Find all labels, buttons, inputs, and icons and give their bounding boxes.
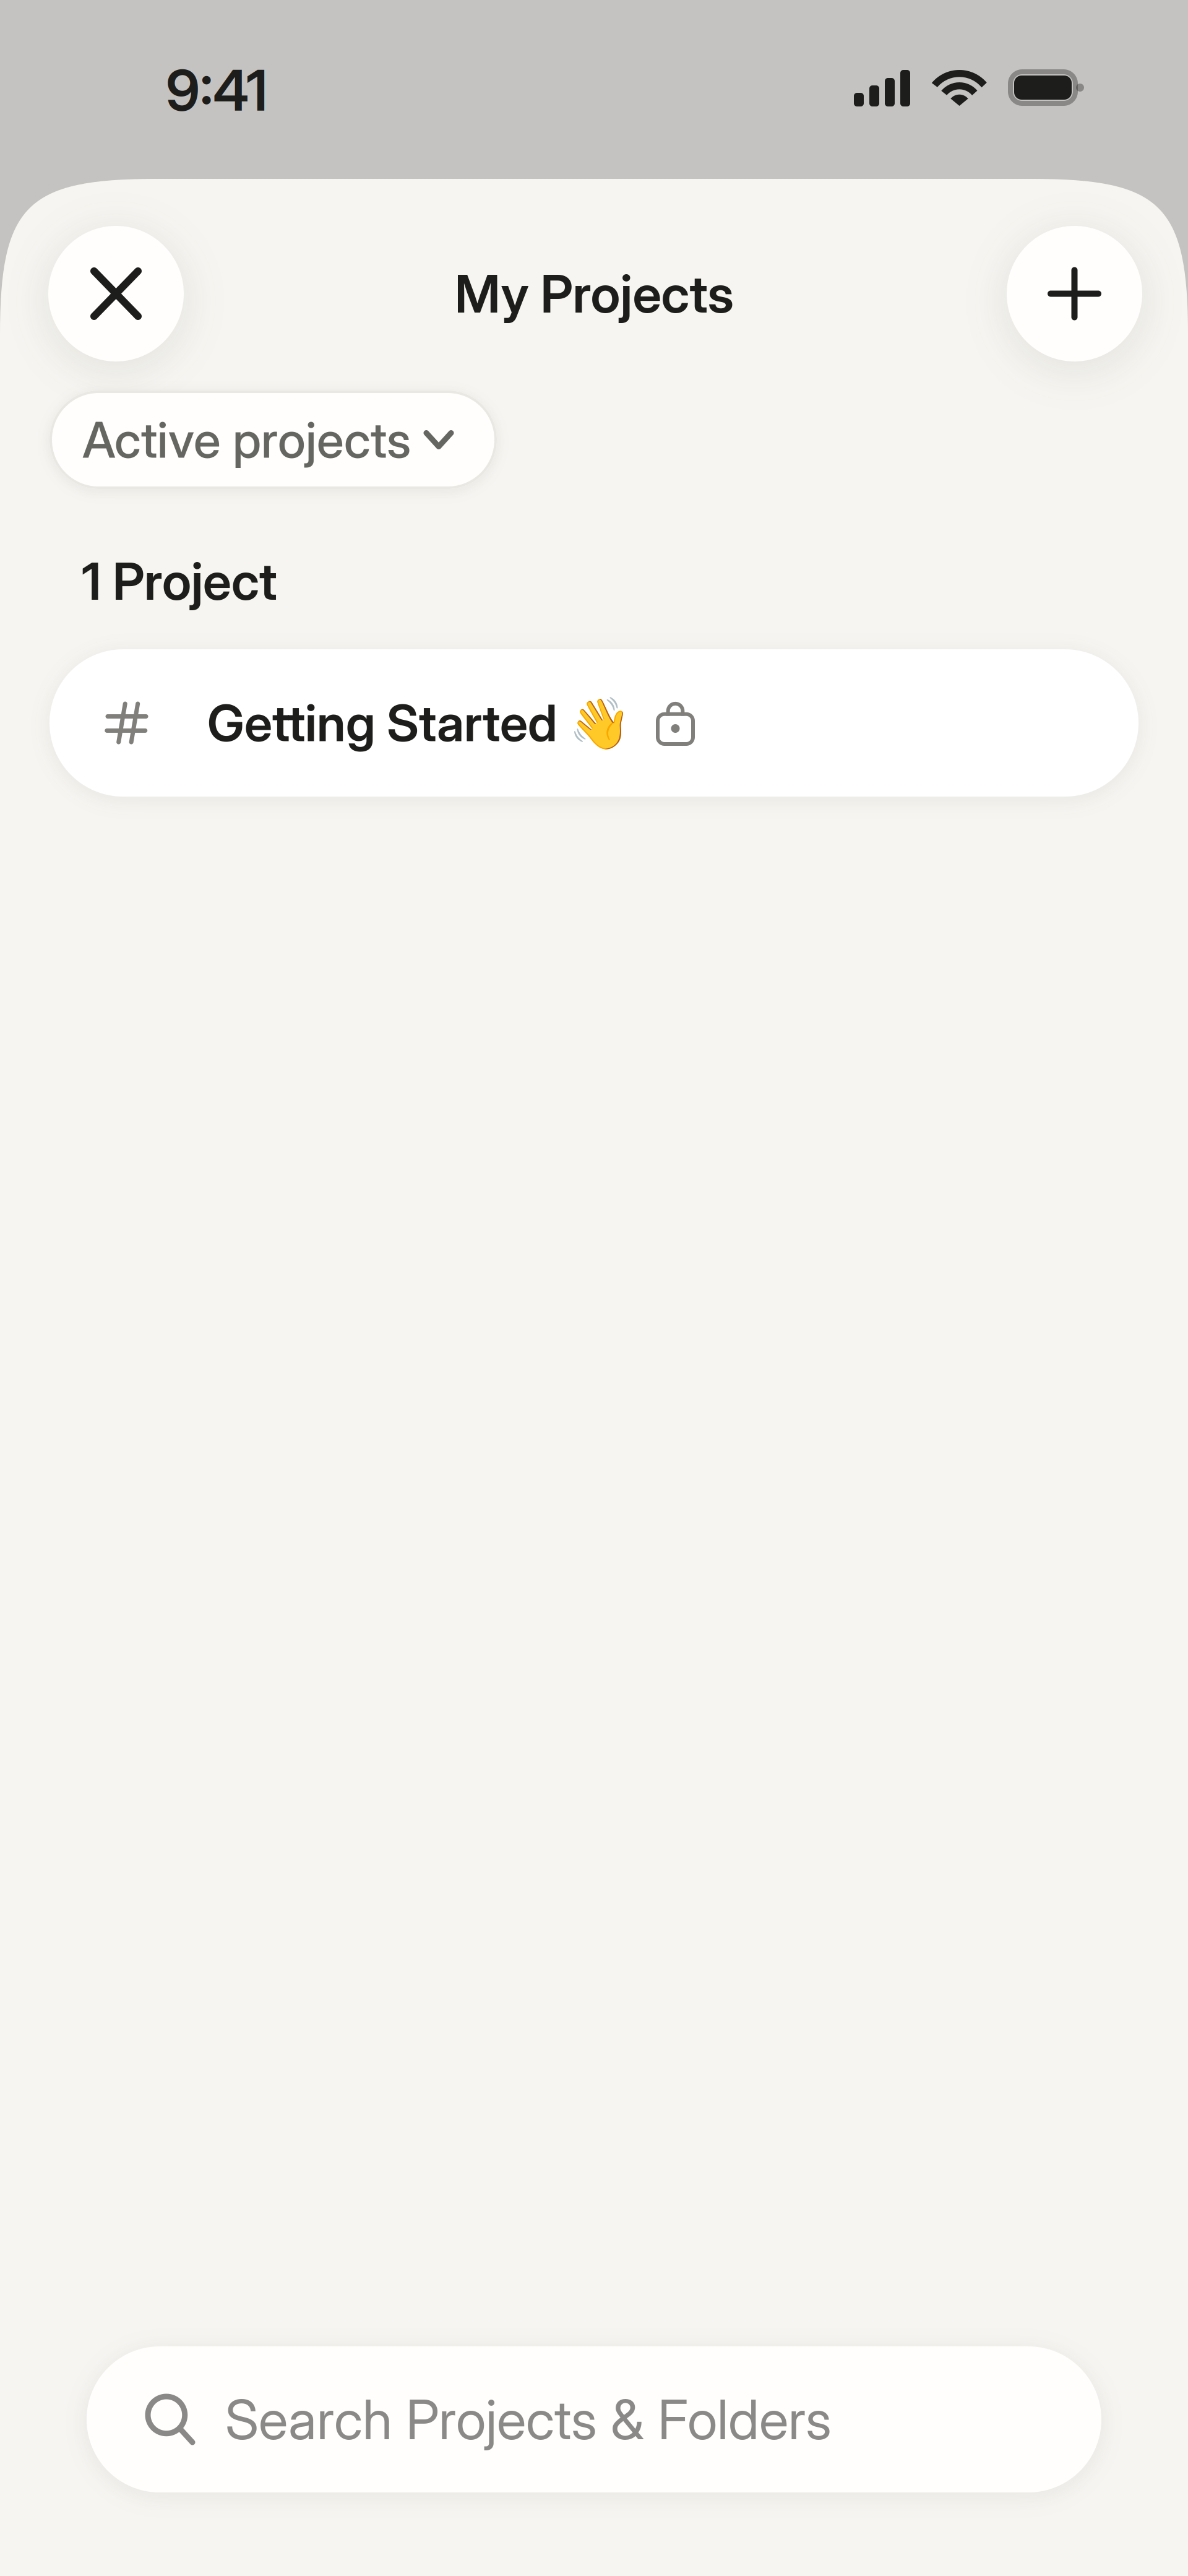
staticText: Search Projects & Folders xyxy=(225,2386,832,2452)
staticText: Active projects xyxy=(82,410,411,470)
button[interactable]: New project xyxy=(1007,226,1142,361)
staticText: 1 Project xyxy=(82,550,277,612)
button[interactable]: Active projects xyxy=(49,391,497,489)
button[interactable]: Getting Started 👋 xyxy=(49,649,1138,797)
button[interactable]: Search Projects & Folders xyxy=(87,2346,1101,2492)
staticText: Getting Started 👋 xyxy=(207,692,631,753)
button[interactable]: Close xyxy=(48,226,184,361)
staticText: My Projects xyxy=(454,262,734,325)
staticText: 9:41 xyxy=(166,56,267,124)
